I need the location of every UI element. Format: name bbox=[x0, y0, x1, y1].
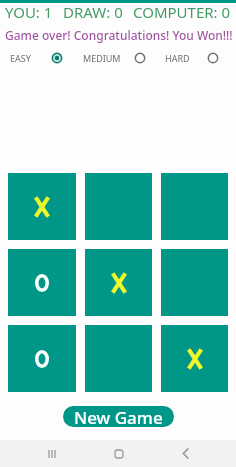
staticText: HARD bbox=[165, 52, 190, 64]
button[interactable]: New Game bbox=[63, 406, 174, 427]
button[interactable] bbox=[161, 325, 228, 392]
staticText: YOU: 1 bbox=[5, 2, 53, 22]
staticText: New Game bbox=[74, 406, 163, 427]
staticText: EASY bbox=[10, 52, 31, 64]
button[interactable] bbox=[85, 249, 152, 316]
staticText: MEDIUM bbox=[83, 52, 121, 64]
button[interactable]: Home bbox=[106, 440, 132, 467]
button[interactable]: Back bbox=[172, 440, 198, 467]
button[interactable] bbox=[8, 325, 76, 392]
button[interactable] bbox=[8, 173, 76, 240]
staticText: COMPUTER: 0 bbox=[133, 2, 231, 22]
button[interactable]: MEDIUM bbox=[75, 46, 148, 70]
staticText: Game over! Congratulations! You Won!!! bbox=[5, 27, 233, 43]
button[interactable]: Recent apps bbox=[39, 440, 65, 467]
button[interactable]: HARD bbox=[157, 46, 221, 70]
button[interactable]: EASY bbox=[2, 46, 65, 70]
staticText: DRAW: 0 bbox=[63, 2, 123, 22]
button[interactable] bbox=[8, 249, 76, 316]
